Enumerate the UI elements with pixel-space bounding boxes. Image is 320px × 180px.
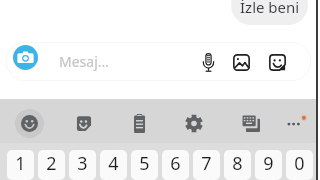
staticText: 0 (294, 151, 305, 176)
button[interactable]: 7 (193, 150, 220, 180)
button[interactable]: Settings (180, 109, 208, 137)
staticText: 4 (108, 151, 119, 176)
staticText: Mesaj... (59, 52, 110, 71)
staticText: 3 (77, 151, 88, 176)
staticText: 8 (232, 151, 243, 176)
button[interactable]: Clipboard (125, 109, 153, 137)
button[interactable]: 1 (7, 150, 34, 180)
button[interactable]: Stickers (70, 109, 98, 137)
staticText: 7 (201, 151, 212, 176)
button[interactable]: Voice input (196, 50, 220, 74)
button[interactable]: 8 (224, 150, 251, 180)
button[interactable]: Switch keyboard (237, 109, 265, 137)
button[interactable]: 3 (69, 150, 96, 180)
button[interactable]: More options (284, 111, 308, 135)
button[interactable]: Gallery (229, 50, 253, 74)
button[interactable]: 0 (286, 150, 313, 180)
staticText: 2 (46, 151, 57, 176)
staticText: 1 (15, 151, 26, 176)
button[interactable]: Emoji (15, 109, 44, 138)
button[interactable]: 4 (100, 150, 127, 180)
button[interactable]: 5 (131, 150, 158, 180)
button[interactable]: 6 (162, 150, 189, 180)
staticText: 9 (263, 151, 274, 176)
button[interactable]: Stickers (265, 50, 289, 74)
button[interactable]: 2 (38, 150, 65, 180)
staticText: 5 (139, 151, 150, 176)
button[interactable]: Open camera (13, 45, 38, 70)
button[interactable]: İzle beni (231, 0, 308, 25)
staticText: İzle beni (240, 0, 300, 17)
staticText: 6 (170, 151, 181, 176)
button[interactable]: 9 (255, 150, 282, 180)
